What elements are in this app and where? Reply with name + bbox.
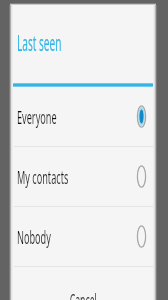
staticText: Last seen [17, 27, 61, 58]
staticText: Everyone [17, 105, 57, 129]
button[interactable]: My contacts [10, 147, 156, 206]
staticText: Cancel [70, 288, 97, 300]
staticText: Nobody [17, 225, 51, 249]
button[interactable]: Everyone [10, 87, 156, 146]
button[interactable]: Cancel [10, 267, 156, 300]
staticText: My contacts [17, 165, 68, 189]
button[interactable]: Nobody [10, 207, 156, 266]
